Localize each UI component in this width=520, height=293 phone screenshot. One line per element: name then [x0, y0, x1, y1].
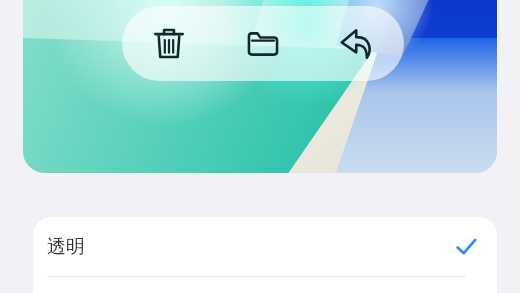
button[interactable]: 透明	[33, 217, 497, 276]
staticText: 透明	[47, 235, 85, 259]
button[interactable]: Undo	[310, 6, 404, 81]
button[interactable]: Delete	[122, 6, 216, 81]
button[interactable]: Move to folder	[216, 6, 310, 81]
